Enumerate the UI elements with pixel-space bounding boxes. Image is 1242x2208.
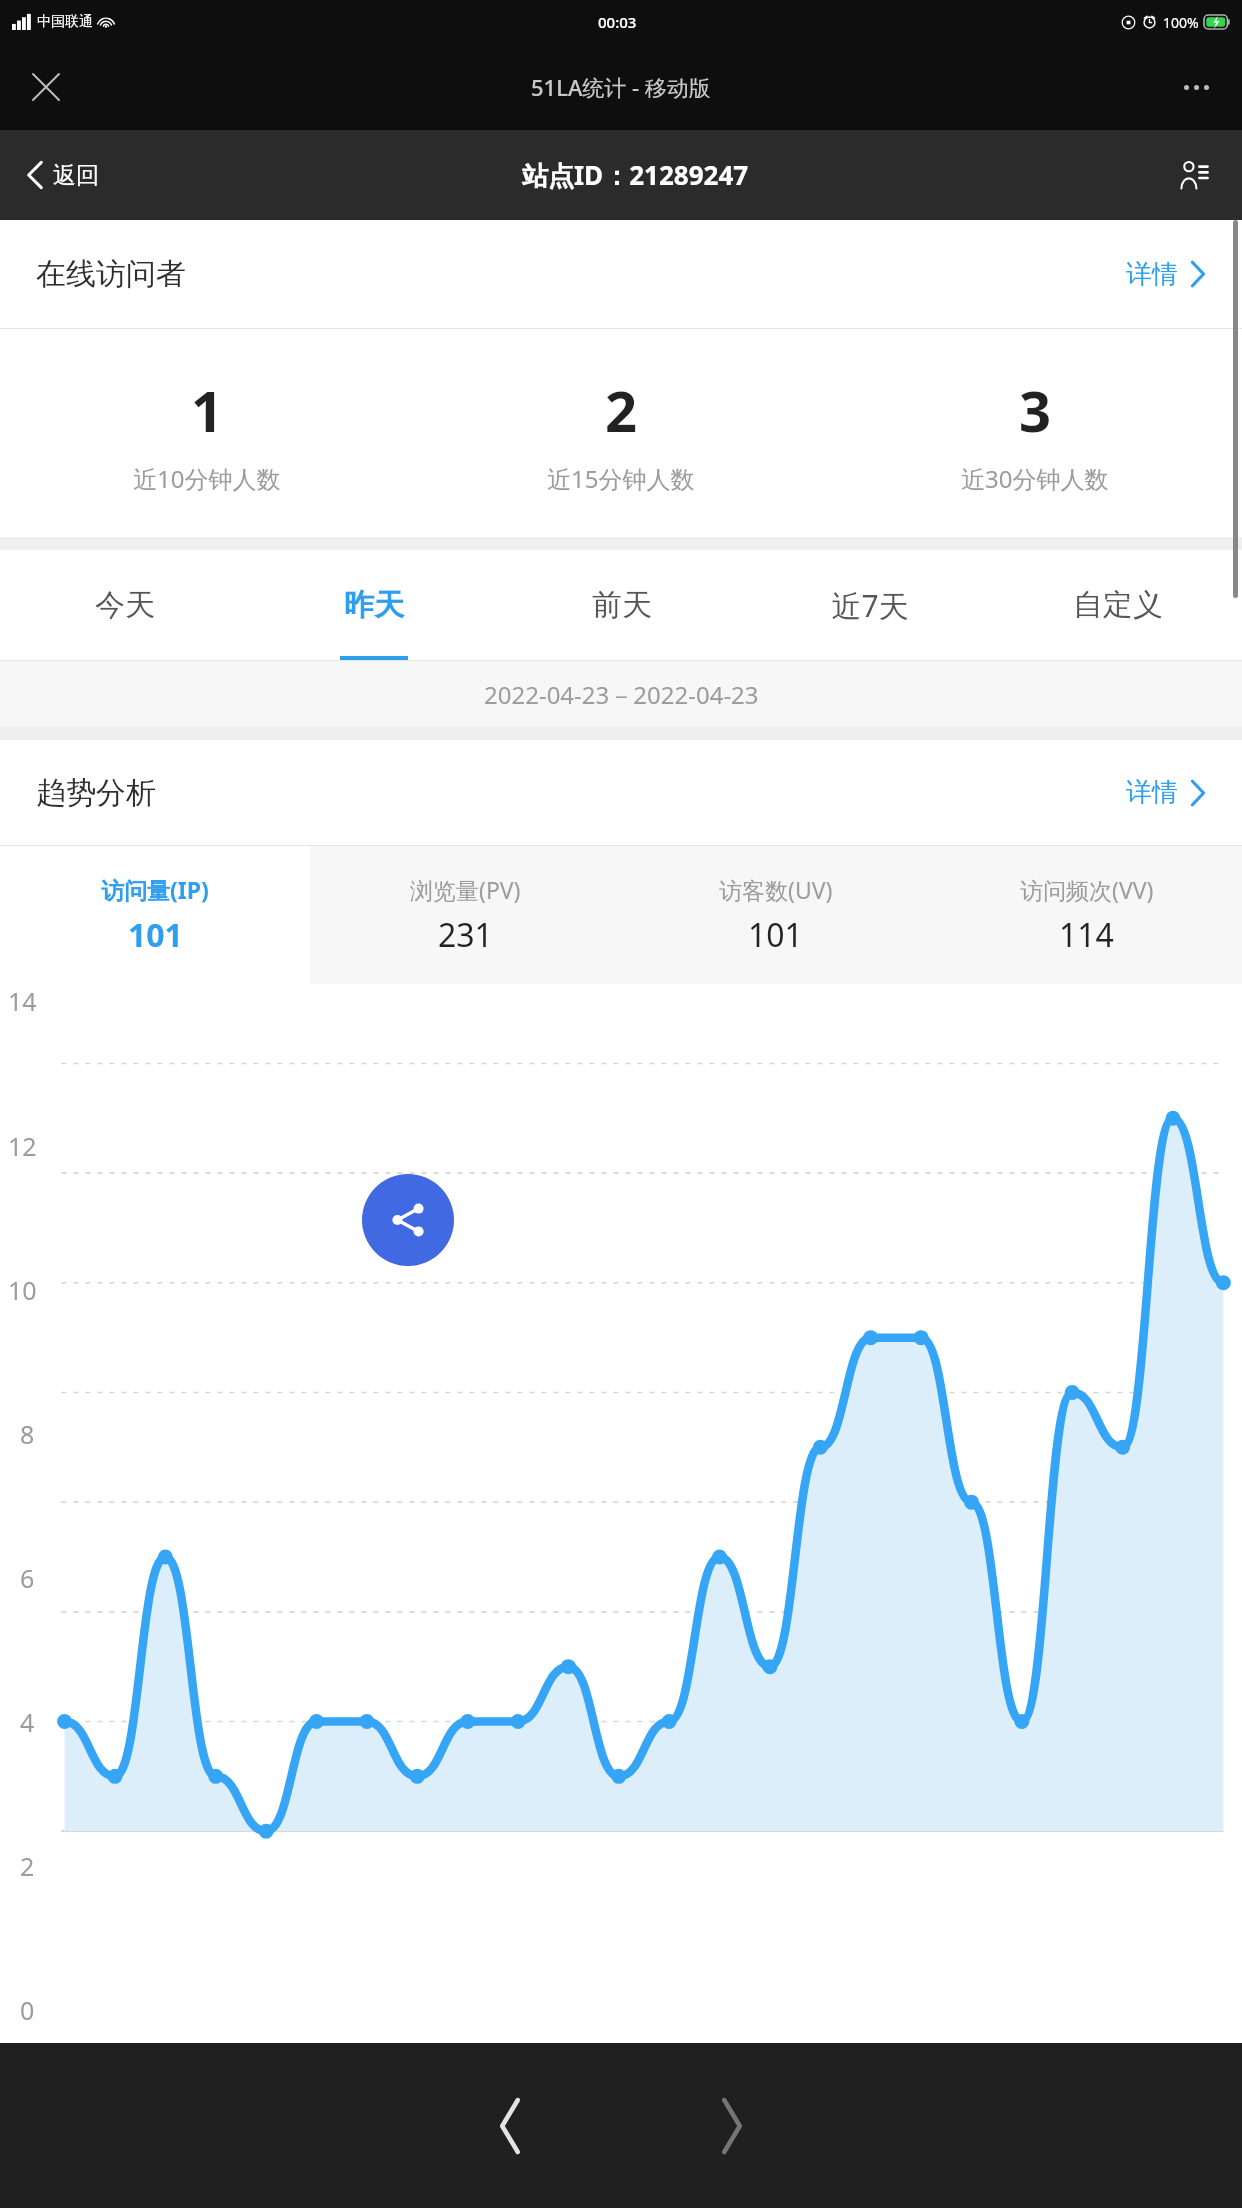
staticText: 101 (128, 913, 183, 957)
staticText: 100% (1163, 13, 1199, 32)
staticText: 浏览量(PV) (410, 874, 521, 905)
button[interactable]: 访客数(UV) (620, 846, 931, 984)
button[interactable]: 自定义 (994, 550, 1242, 660)
staticText: 访客数(UV) (719, 874, 833, 905)
staticText: 近30分钟人数 (961, 462, 1109, 495)
staticText: 近7天 (831, 585, 909, 626)
staticText: 4 (20, 1705, 35, 1739)
staticText: 114 (1059, 913, 1114, 957)
button[interactable]: 前天 (498, 550, 746, 660)
button[interactable]: 1 (0, 329, 414, 537)
staticText: 8 (20, 1417, 35, 1451)
staticText: 51LA统计 - 移动版 (531, 72, 711, 102)
button[interactable]: 访问频次(VV) (931, 846, 1242, 984)
staticText: 00:03 (598, 12, 637, 32)
staticText: 详情 (1126, 776, 1178, 809)
staticText: 自定义 (1073, 586, 1163, 624)
button[interactable]: 返回 (22, 152, 103, 198)
button[interactable]: 3 (828, 329, 1242, 537)
staticText: 12 (8, 1129, 37, 1163)
staticText: 昨天 (344, 586, 404, 624)
staticText: 近10分钟人数 (133, 462, 281, 495)
staticText: 10 (8, 1273, 37, 1307)
staticText: 231 (438, 913, 493, 957)
button[interactable]: Share (362, 1174, 454, 1266)
button[interactable]: 趋势分析 (0, 740, 1242, 845)
staticText: 14 (8, 984, 37, 1018)
button[interactable]: 访问量(IP) (0, 846, 310, 984)
staticText: 今天 (95, 586, 155, 624)
button[interactable]: 在线访问者 (0, 220, 1242, 328)
staticText: 详情 (1126, 258, 1178, 291)
button[interactable]: Contacts (1168, 149, 1220, 201)
staticText: 2 (20, 1849, 35, 1883)
staticText: 站点ID：21289247 (522, 157, 749, 193)
staticText: 中国联通 (37, 13, 93, 31)
staticText: 近15分钟人数 (547, 462, 695, 495)
staticText: 6 (20, 1561, 35, 1595)
staticText: 1 (191, 372, 224, 448)
button[interactable]: 今天 (0, 550, 249, 660)
staticText: 3 (1019, 372, 1052, 448)
button[interactable]: 昨天 (249, 550, 498, 660)
staticText: 在线访问者 (36, 255, 186, 293)
button[interactable]: Forward (677, 2071, 787, 2181)
staticText: 2 (605, 372, 638, 448)
staticText: 101 (748, 913, 803, 957)
button[interactable]: 近7天 (746, 550, 994, 660)
staticText: 趋势分析 (36, 774, 156, 812)
staticText: 返回 (53, 161, 99, 190)
button[interactable]: Back (455, 2071, 565, 2181)
button[interactable]: 2 (414, 329, 828, 537)
button[interactable]: More options (1172, 63, 1220, 111)
staticText: 访问频次(VV) (1020, 874, 1154, 905)
button[interactable]: Close (22, 63, 70, 111)
staticText: 前天 (592, 586, 652, 624)
staticText: 访问量(IP) (101, 874, 209, 905)
staticText: 2022-04-23－2022-04-23 (484, 678, 759, 711)
button[interactable]: 浏览量(PV) (310, 846, 620, 984)
staticText: 0 (20, 1993, 35, 2027)
